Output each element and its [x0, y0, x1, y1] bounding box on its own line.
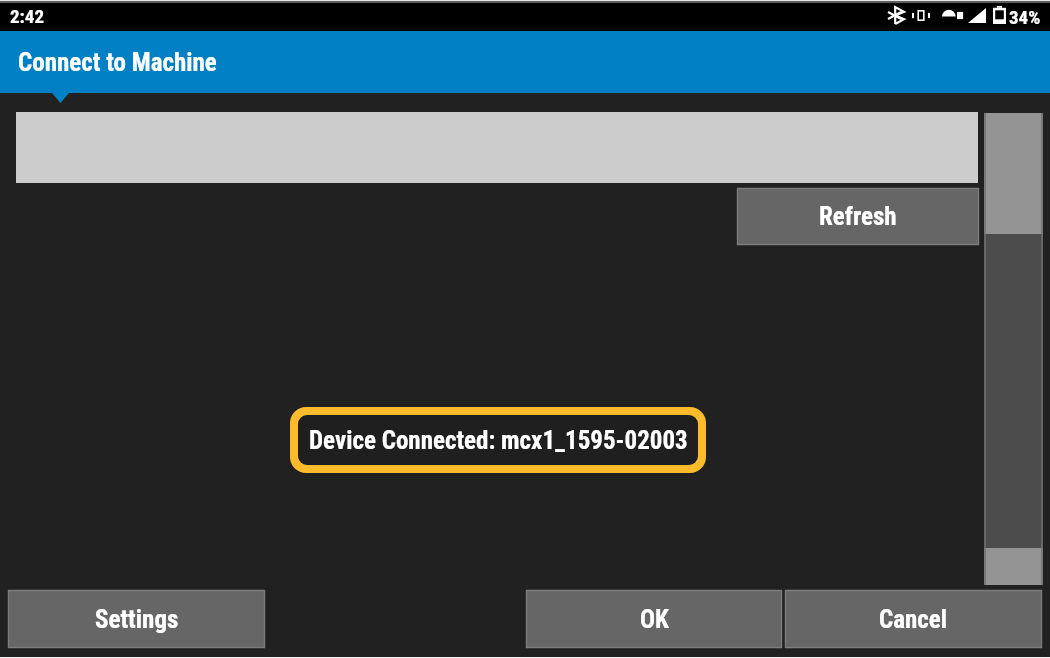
- other: Signal strength: [968, 8, 986, 23]
- button[interactable]: Cancel: [785, 590, 1042, 648]
- other: Location: [942, 8, 964, 23]
- other: Bluetooth: [888, 7, 904, 24]
- button[interactable]: Device Connected: mcx1_1595-02003: [298, 415, 698, 465]
- button[interactable]: Connect to Machine: [0, 31, 1050, 93]
- button[interactable]: Scroll: [984, 113, 1043, 585]
- staticText: Settings: [95, 605, 179, 634]
- staticText: Cancel: [879, 605, 948, 634]
- staticText: 2:42: [10, 5, 45, 27]
- staticText: OK: [640, 605, 669, 634]
- staticText: Connect to Machine: [18, 48, 217, 77]
- button[interactable]: OK: [526, 590, 782, 648]
- button[interactable]: Refresh: [737, 188, 979, 245]
- staticText: Device Connected: mcx1_1595-02003: [309, 426, 688, 455]
- button[interactable]: Settings: [8, 590, 265, 648]
- staticText: 34%: [1009, 6, 1041, 28]
- other: Battery: [993, 6, 1006, 24]
- staticText: Refresh: [819, 202, 897, 231]
- other: Vibrate: [911, 9, 931, 22]
